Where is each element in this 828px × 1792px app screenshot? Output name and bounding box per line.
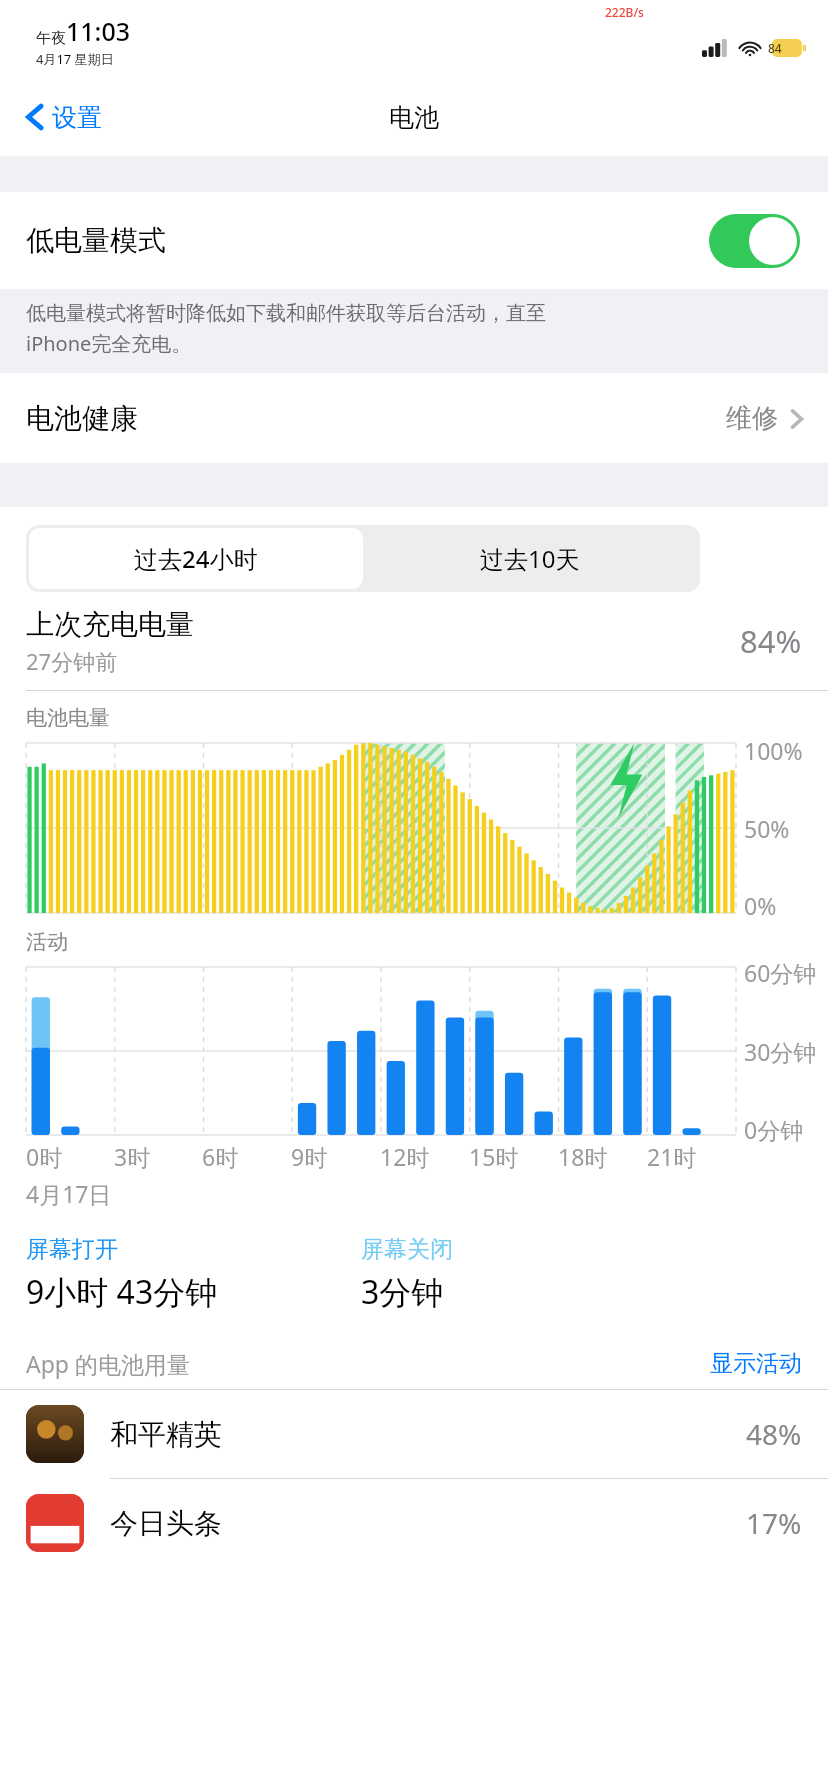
staticText: 今日头条 [110, 1506, 222, 1541]
staticText: 30分钟 [744, 1036, 817, 1067]
staticText: 电池健康 [26, 401, 138, 436]
staticText: 屏幕关闭 [361, 1235, 453, 1264]
staticText: 84% [740, 620, 802, 662]
button[interactable]: 今日头条 [0, 1479, 828, 1567]
staticText: App 的电池用量 [26, 1348, 190, 1379]
staticText: 电池 [389, 102, 439, 133]
staticText: 6时 [202, 1141, 239, 1172]
staticText: 100% [744, 735, 803, 766]
staticText: 9时 [291, 1141, 328, 1172]
button[interactable]: 低电量模式开关 [709, 214, 800, 268]
staticText: 50% [744, 813, 790, 844]
button[interactable]: 电池健康 [0, 373, 828, 463]
staticText: 电池电量 [26, 705, 110, 731]
staticText: 屏幕打开 [26, 1235, 118, 1264]
staticText: 12时 [380, 1141, 430, 1172]
button[interactable]: 过去24小时 [29, 528, 363, 589]
staticText: 60分钟 [744, 957, 817, 988]
staticText: 0% [744, 890, 777, 921]
staticText: 84 [768, 40, 782, 56]
staticText: 过去10天 [480, 542, 580, 575]
staticText: 3时 [114, 1141, 151, 1172]
staticText: 活动 [26, 929, 68, 955]
staticText: 显示活动 [710, 1349, 802, 1378]
staticText: 21时 [647, 1141, 697, 1172]
staticText: 午夜 [36, 29, 66, 48]
staticText: 和平精英 [110, 1417, 222, 1452]
staticText: 0分钟 [744, 1114, 804, 1145]
staticText: 过去24小时 [134, 542, 258, 575]
staticText: 4月17 星期日 [36, 50, 114, 68]
staticText: 17% [746, 1504, 802, 1542]
staticText: 15时 [469, 1141, 519, 1172]
staticText: 48% [746, 1415, 802, 1453]
staticText: 设置 [52, 102, 102, 133]
staticText: 上次充电电量 [26, 607, 194, 642]
staticText: 0时 [26, 1141, 63, 1172]
button[interactable]: 过去10天 [363, 528, 697, 589]
staticText: 11:03 [66, 14, 131, 48]
staticText: 4月17日 [26, 1178, 112, 1209]
button[interactable]: 显示活动 [710, 1349, 802, 1378]
staticText: 低电量模式 [26, 223, 166, 258]
staticText: 维修 [726, 402, 778, 435]
button[interactable]: 设置 [20, 94, 106, 140]
staticText: 27分钟前 [26, 646, 118, 676]
button[interactable]: 和平精英 [0, 1390, 828, 1478]
staticText: 低电量模式将暂时降低如下载和邮件获取等后台活动，直至 iPhone完全充电。 [26, 301, 546, 357]
staticText: 222B/s [605, 4, 644, 20]
staticText: 18时 [558, 1141, 608, 1172]
button[interactable]: 低电量模式 [0, 192, 828, 289]
staticText: 9小时 43分钟 [26, 1270, 218, 1314]
staticText: 3分钟 [361, 1270, 444, 1314]
